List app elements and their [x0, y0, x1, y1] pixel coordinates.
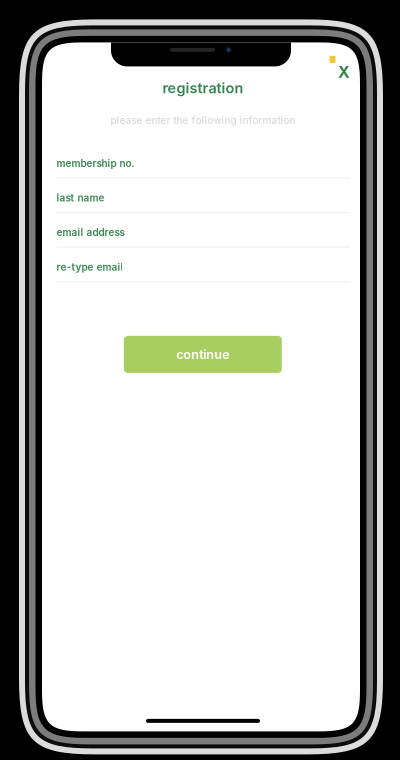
staticText: last name — [56, 192, 104, 204]
button[interactable]: membership no. — [56, 144, 350, 179]
button[interactable]: Close — [333, 61, 355, 83]
staticText: membership no. — [56, 157, 134, 169]
staticText: please enter the following information — [110, 114, 295, 126]
button[interactable]: continue — [124, 336, 282, 373]
staticText: X — [338, 62, 350, 82]
staticText: re-type email — [56, 261, 123, 273]
staticText: continue — [176, 347, 229, 362]
staticText: registration — [162, 79, 243, 97]
button[interactable]: re-type email — [56, 248, 350, 282]
button[interactable]: email address — [56, 213, 350, 248]
button[interactable]: last name — [56, 179, 350, 213]
staticText: email address — [56, 226, 124, 238]
